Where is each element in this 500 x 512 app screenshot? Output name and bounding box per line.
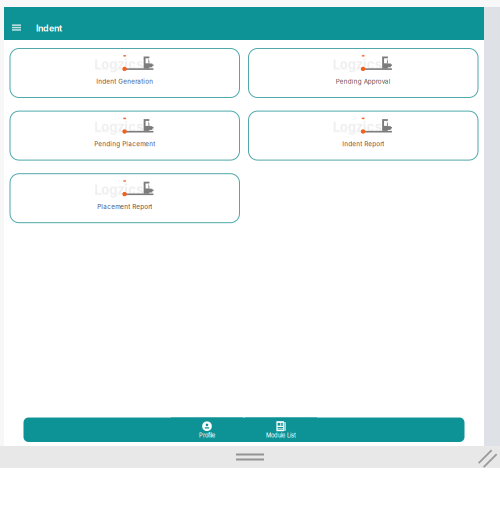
- button[interactable]: Profile: [171, 417, 243, 442]
- staticText: Indent Report: [342, 140, 384, 148]
- button[interactable]: Logzics: [10, 174, 239, 223]
- staticText: Pending Placement: [94, 140, 155, 148]
- staticText: move on the move: [95, 192, 125, 196]
- staticText: Logzics: [333, 119, 382, 135]
- staticText: move on the move: [95, 67, 125, 71]
- staticText: Logzics: [94, 119, 143, 135]
- button[interactable]: Module List: [245, 417, 317, 442]
- staticText: Logzics: [333, 57, 382, 72]
- staticText: Pending Approval: [336, 78, 391, 85]
- staticText: Logzics: [94, 57, 143, 72]
- button[interactable]: Logzics: [10, 111, 239, 160]
- button[interactable]: Menu: [4, 7, 29, 40]
- staticText: move on the move: [334, 130, 364, 134]
- staticText: Profile: [199, 432, 215, 439]
- staticText: Logzics: [94, 182, 143, 197]
- staticText: Placement Report: [97, 203, 152, 210]
- staticText: Module List: [266, 432, 296, 439]
- button[interactable]: Logzics: [248, 111, 478, 160]
- staticText: move on the move: [95, 130, 125, 134]
- button[interactable]: Logzics: [10, 48, 239, 97]
- staticText: Indent: [36, 23, 62, 33]
- staticText: move on the move: [334, 67, 364, 71]
- staticText: Indent Generation: [96, 78, 153, 85]
- button[interactable]: Logzics: [248, 48, 478, 97]
